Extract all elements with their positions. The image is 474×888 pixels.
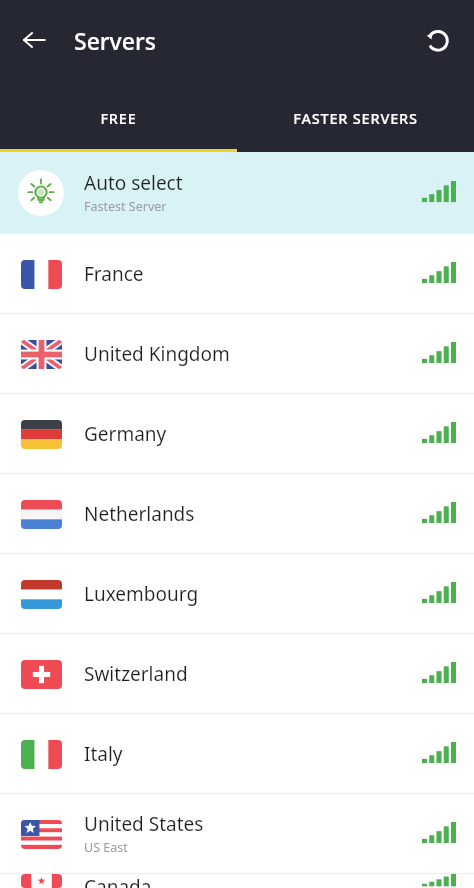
button[interactable]: Auto select: [0, 152, 474, 233]
button[interactable]: Luxembourg: [0, 554, 474, 633]
button[interactable]: Canada: [0, 874, 474, 888]
staticText: United States: [84, 811, 204, 837]
button[interactable]: Italy: [0, 714, 474, 793]
staticText: Switzerland: [84, 661, 188, 687]
staticText: Servers: [74, 25, 156, 56]
staticText: Italy: [84, 741, 123, 767]
button[interactable]: Netherlands: [0, 474, 474, 553]
staticText: Germany: [84, 421, 167, 447]
button[interactable]: United Kingdom: [0, 314, 474, 393]
staticText: Netherlands: [84, 501, 195, 527]
button[interactable]: FREE: [0, 84, 237, 152]
button[interactable]: Refresh: [414, 16, 462, 64]
button[interactable]: Germany: [0, 394, 474, 473]
staticText: Luxembourg: [84, 581, 199, 607]
button[interactable]: Back: [10, 16, 58, 64]
staticText: US East: [84, 839, 128, 856]
staticText: Auto select: [84, 170, 183, 196]
staticText: FREE: [100, 108, 137, 128]
button[interactable]: France: [0, 234, 474, 313]
staticText: United Kingdom: [84, 341, 230, 367]
staticText: FASTER SERVERS: [293, 108, 418, 128]
staticText: Canada: [84, 874, 152, 888]
staticText: France: [84, 261, 144, 287]
staticText: Fastest Server: [84, 198, 167, 215]
button[interactable]: FASTER SERVERS: [237, 84, 474, 152]
button[interactable]: Switzerland: [0, 634, 474, 713]
button[interactable]: United States: [0, 794, 474, 873]
